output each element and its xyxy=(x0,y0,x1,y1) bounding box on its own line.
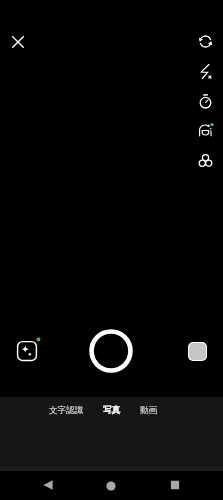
button[interactable]: Timer xyxy=(191,87,220,116)
button[interactable]: Back xyxy=(35,472,61,498)
button[interactable]: Switch camera xyxy=(191,27,220,56)
button[interactable]: Recent apps xyxy=(162,472,188,498)
button[interactable]: Filters xyxy=(191,146,220,175)
button[interactable]: Close xyxy=(3,27,33,57)
staticText: 文字認識 xyxy=(49,405,84,416)
button[interactable]: Gallery xyxy=(188,342,207,361)
staticText: 動画 xyxy=(140,405,158,416)
staticText: 写真 xyxy=(103,405,121,416)
button[interactable]: AI effects xyxy=(11,335,43,367)
button[interactable]: Home xyxy=(98,473,124,499)
button[interactable]: 写真 xyxy=(97,401,127,419)
button[interactable]: 文字認識 xyxy=(43,401,89,419)
button[interactable]: Take photo xyxy=(87,327,135,375)
button[interactable]: AI camera xyxy=(191,116,220,145)
button[interactable]: Flash off xyxy=(191,57,220,86)
button[interactable]: 動画 xyxy=(126,401,172,419)
